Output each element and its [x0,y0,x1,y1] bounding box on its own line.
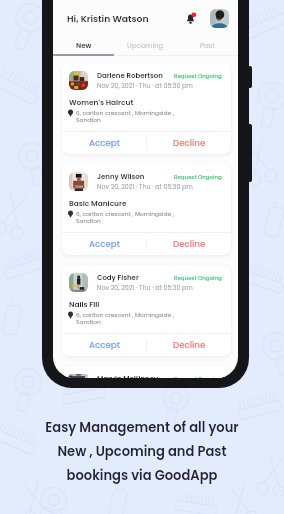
button[interactable]: New [53,31,114,56]
staticText: Nov 20, 2021 · Thu · at 05:30 pm [97,182,193,191]
button[interactable]: Decline [147,132,231,154]
staticText: Basic Manicure [69,198,127,208]
staticText: Nails Fill [69,299,100,309]
button[interactable]: Notifications [185,12,196,25]
button[interactable]: Accept [62,132,146,154]
staticText: Upcoming [127,41,164,51]
button[interactable]: Accept [62,334,146,356]
button[interactable]: Decline [147,334,231,356]
button[interactable]: Decline [147,233,231,255]
staticText: Accept [89,238,120,250]
staticText: Decline [173,339,206,351]
staticText: Accept [89,137,120,149]
staticText: Cody Fisher [97,273,139,283]
staticText: Marvin McKinney [97,374,159,378]
staticText: Request Ongoing [174,274,222,282]
staticText: Hi, Kristin Watson [67,12,149,25]
staticText: Past [200,41,215,51]
button[interactable]: Darlene Robertson [62,63,231,154]
staticText: Nov 20, 2021 · Thu · at 05:30 pm [97,283,193,292]
staticText: Easy Management of all your New , Upcomi… [45,418,239,484]
staticText: New [76,41,92,51]
staticText: Women's Haircut [69,97,134,107]
staticText: Darlene Robertson [97,71,163,81]
staticText: Request Ongoing [174,72,222,80]
staticText: Nov 20, 2021 · Thu · at 05:30 pm [97,81,193,90]
button[interactable]: Cody Fisher [62,265,231,356]
button[interactable]: Upcoming [114,31,176,56]
staticText: Decline [173,238,206,250]
staticText: 6, carlton crescent , Morningside , Sand… [76,311,174,326]
staticText: Accept [89,339,120,351]
button[interactable]: Marvin McKinney [62,366,231,378]
staticText: Jenny Wilson [97,172,145,182]
button[interactable]: Accept [62,233,146,255]
staticText: 6, carlton crescent , Morningside , Sand… [76,109,174,124]
button[interactable]: Past [176,31,238,56]
button[interactable]: Profile [210,9,229,28]
button[interactable]: Jenny Wilson [62,164,231,255]
staticText: Request Ongoing [174,375,222,378]
staticText: Request Ongoing [174,173,222,181]
staticText: Decline [173,137,206,149]
staticText: 6, carlton crescent , Morningside , Sand… [76,210,174,225]
